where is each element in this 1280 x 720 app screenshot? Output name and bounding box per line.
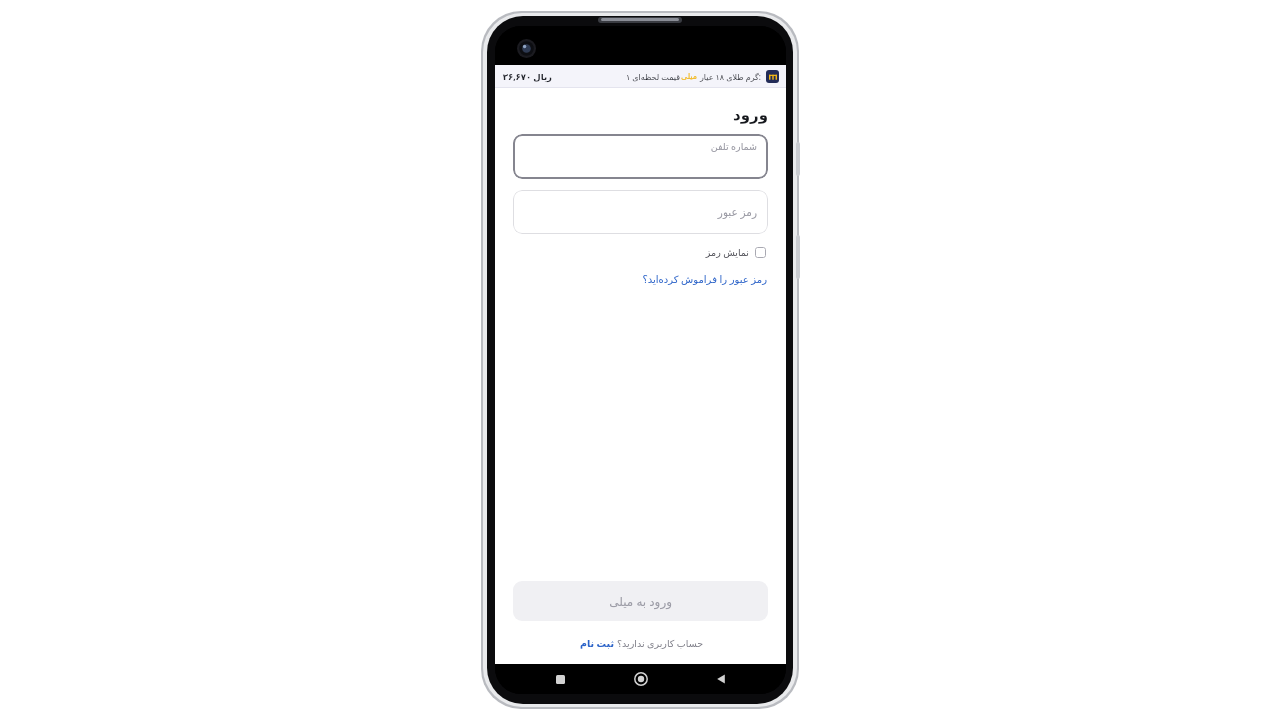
- staticText: ثبت نام: [579, 637, 614, 650]
- staticText: میلی: [680, 72, 697, 81]
- button[interactable]: Recent apps: [545, 664, 575, 694]
- button[interactable]: Back: [706, 664, 736, 694]
- other: Mily logo: [766, 70, 779, 83]
- staticText: شماره تلفن: [524, 140, 757, 153]
- staticText: گرم طلای ۱۸ عیار:: [697, 71, 761, 82]
- button[interactable]: رمز عبور را فراموش کرده‌اید؟: [641, 271, 768, 287]
- staticText: ورود: [513, 106, 768, 123]
- button[interactable]: نمایش رمز: [703, 244, 768, 261]
- button[interactable]: Home: [626, 664, 656, 694]
- staticText: ورود به میلی: [609, 593, 672, 609]
- staticText: ۳۶,۶۷۰ ریال: [502, 71, 552, 83]
- button[interactable]: ورود به میلی: [513, 581, 768, 621]
- staticText: حساب کاربری ندارید؟: [617, 637, 703, 650]
- staticText: رمز عبور را فراموش کرده‌اید؟: [642, 272, 767, 286]
- staticText: قیمت لحظه‌ای ۱: [623, 71, 680, 82]
- staticText: نمایش رمز: [705, 246, 749, 259]
- button[interactable]: شماره تلفن: [513, 134, 768, 179]
- staticText: رمز عبور: [524, 205, 757, 219]
- button[interactable]: ثبت نام: [513, 637, 768, 650]
- button[interactable]: رمز عبور: [513, 190, 768, 234]
- button[interactable]: ۳۶,۶۷۰ ریال: [495, 65, 786, 87]
